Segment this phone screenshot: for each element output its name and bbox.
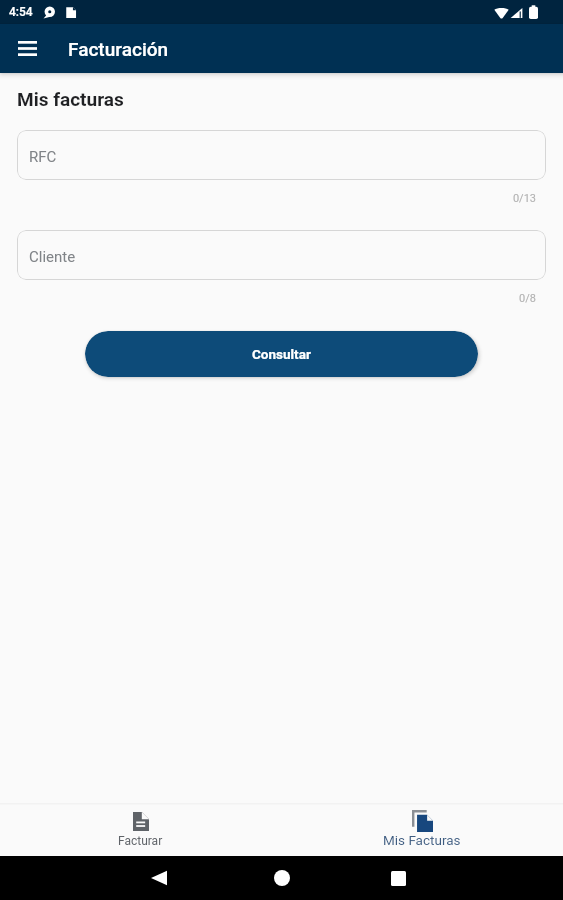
staticText: Mis Facturas [383,832,461,848]
button[interactable]: Recent apps [378,858,418,898]
staticText: Facturación [68,38,169,60]
staticText: RFC [29,148,57,166]
staticText: Mis facturas [17,88,124,110]
staticText: Cliente [29,248,76,266]
staticText: 0/13 [512,192,536,205]
button[interactable]: Home [262,858,302,898]
button[interactable]: RFC [17,130,546,180]
staticText: Consultar [252,346,311,362]
staticText: 4:54 [9,5,33,19]
button[interactable]: Facturar [0,805,281,856]
button[interactable]: Back [139,858,179,898]
button[interactable]: Consultar [85,331,478,377]
button[interactable]: Open navigation menu [4,26,50,72]
staticText: Facturar [118,834,163,848]
staticText: 0/8 [519,292,536,305]
button[interactable]: Cliente [17,230,546,280]
button[interactable]: Mis Facturas [281,805,563,856]
